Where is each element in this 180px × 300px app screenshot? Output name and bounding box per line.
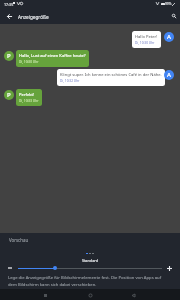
staticText: A: [167, 71, 171, 79]
button[interactable]: Zurück: [127, 290, 140, 300]
staticText: Perfekt!: [19, 92, 34, 98]
staticText: Klingt super. Ich kenne ein schönes Café…: [60, 72, 162, 78]
button[interactable]: Zurück: [2, 9, 17, 24]
staticText: P: [7, 52, 11, 60]
staticText: Lege die Anzeigegröße für Bildschirmelem…: [8, 275, 164, 287]
staticText: 17:35: [4, 2, 14, 7]
staticText: Vorschau: [9, 237, 29, 243]
staticText: Di, 10:33 Uhr: [19, 99, 39, 103]
button[interactable]: Startbildschirm: [84, 290, 97, 300]
staticText: Di, 10:30 Uhr: [19, 60, 39, 64]
staticText: Anzeigegröße: [18, 14, 49, 20]
button[interactable]: Vergrößern: [163, 262, 175, 274]
button[interactable]: Suchen: [167, 9, 180, 23]
button[interactable]: Anzeigegröße ändern: [18, 263, 162, 273]
staticText: Di, 10:30 Uhr: [135, 41, 155, 45]
staticText: A: [167, 33, 171, 41]
button[interactable]: Übersicht: [39, 290, 52, 300]
staticText: P: [7, 91, 11, 99]
button[interactable]: Verkleinern: [4, 262, 16, 274]
staticText: 99%: [165, 2, 172, 6]
staticText: Di, 10:32 Uhr: [60, 79, 80, 83]
staticText: Hallo, Lust auf einen Kaffee heute?: [19, 53, 86, 59]
staticText: Standard: [0, 258, 180, 263]
staticText: Hallo Peter!: [135, 34, 158, 40]
